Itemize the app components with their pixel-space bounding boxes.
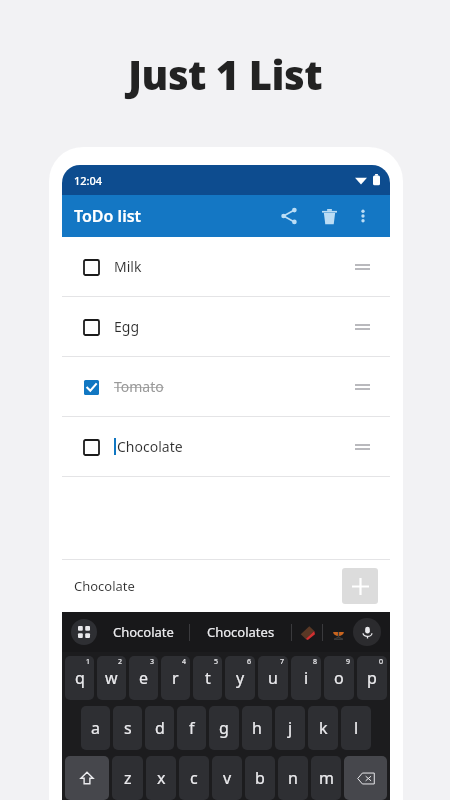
button[interactable]: Chocolate xyxy=(74,560,342,612)
button[interactable]: Chocolate xyxy=(97,623,189,641)
staticText: g xyxy=(219,717,229,739)
staticText: t xyxy=(205,667,211,689)
staticText: Chocolates xyxy=(207,623,275,641)
button[interactable]: i xyxy=(291,656,321,700)
staticText: n xyxy=(288,767,298,789)
button[interactable]: Uncheck Tomato xyxy=(76,372,106,402)
button[interactable]: g xyxy=(209,706,239,750)
staticText: m xyxy=(319,767,334,789)
staticText: 9 xyxy=(346,657,351,667)
staticText: o xyxy=(334,667,344,689)
button[interactable]: Voice input xyxy=(353,618,381,646)
button[interactable]: c xyxy=(179,756,209,800)
button[interactable]: l xyxy=(341,706,371,750)
button[interactable]: m xyxy=(311,756,341,800)
button[interactable]: r xyxy=(161,656,190,700)
staticText: e xyxy=(139,667,149,689)
staticText: s xyxy=(124,717,132,739)
staticText: 1 xyxy=(86,657,91,667)
button[interactable]: Check Chocolate xyxy=(62,417,390,476)
button[interactable]: Chocolate emoji xyxy=(292,625,322,640)
button[interactable]: Reorder Milk xyxy=(348,253,376,281)
staticText: Tomato xyxy=(114,377,164,396)
staticText: Chocolate xyxy=(117,437,183,456)
button[interactable]: Check Egg xyxy=(76,312,106,342)
button[interactable]: Share xyxy=(272,199,306,233)
button[interactable]: Check Milk xyxy=(76,252,106,282)
button[interactable]: n xyxy=(278,756,308,800)
button[interactable]: o xyxy=(324,656,354,700)
staticText: u xyxy=(268,667,278,689)
staticText: i xyxy=(304,667,309,689)
button[interactable]: Reorder Tomato xyxy=(348,373,376,401)
button[interactable]: d xyxy=(145,706,174,750)
staticText: r xyxy=(172,667,179,689)
button[interactable]: j xyxy=(275,706,305,750)
button[interactable]: t xyxy=(193,656,222,700)
staticText: Just 1 List xyxy=(128,47,323,101)
staticText: v xyxy=(223,767,232,789)
staticText: Egg xyxy=(114,317,140,336)
button[interactable]: p xyxy=(357,656,387,700)
staticText: 5 xyxy=(214,657,219,667)
staticText: 2 xyxy=(118,657,123,667)
button[interactable]: f xyxy=(177,706,206,750)
button[interactable]: z xyxy=(112,756,143,800)
button[interactable]: q xyxy=(65,656,94,700)
staticText: y xyxy=(236,667,245,689)
button[interactable]: b xyxy=(245,756,275,800)
button[interactable]: Fondue emoji xyxy=(323,625,353,640)
staticText: 12:04 xyxy=(74,173,103,188)
button[interactable]: Uncheck Tomato xyxy=(62,357,390,416)
button[interactable]: Reorder Egg xyxy=(348,313,376,341)
staticText: k xyxy=(319,717,328,739)
button[interactable]: Clipboard xyxy=(71,619,97,645)
staticText: Milk xyxy=(114,257,142,276)
button[interactable]: v xyxy=(212,756,242,800)
button[interactable]: y xyxy=(225,656,255,700)
button[interactable]: e xyxy=(129,656,158,700)
button[interactable]: Backspace xyxy=(344,756,387,800)
button[interactable]: Delete xyxy=(312,199,346,233)
button[interactable]: x xyxy=(146,756,176,800)
staticText: z xyxy=(124,767,132,789)
staticText: w xyxy=(105,667,118,689)
staticText: 3 xyxy=(150,657,155,667)
staticText: Chocolate xyxy=(74,577,135,595)
button[interactable]: Check Egg xyxy=(62,297,390,356)
staticText: x xyxy=(157,767,166,789)
button[interactable]: Add item xyxy=(342,568,378,604)
button[interactable]: Chocolates xyxy=(190,623,291,641)
staticText: b xyxy=(255,767,265,789)
button[interactable]: u xyxy=(258,656,288,700)
staticText: 8 xyxy=(313,657,318,667)
button[interactable]: a xyxy=(81,706,110,750)
button[interactable]: More options xyxy=(348,201,378,231)
button[interactable]: Shift xyxy=(65,756,109,800)
staticText: j xyxy=(288,717,293,739)
staticText: a xyxy=(91,717,100,739)
button[interactable]: Check Milk xyxy=(62,237,390,296)
staticText: q xyxy=(75,667,85,689)
staticText: p xyxy=(367,667,377,689)
button[interactable]: Reorder Chocolate xyxy=(348,433,376,461)
staticText: 7 xyxy=(280,657,285,667)
staticText: 6 xyxy=(247,657,252,667)
staticText: Chocolate xyxy=(113,623,174,641)
staticText: c xyxy=(190,767,198,789)
staticText: d xyxy=(155,717,165,739)
button[interactable]: Check Chocolate xyxy=(76,432,106,462)
staticText: h xyxy=(252,717,262,739)
button[interactable]: w xyxy=(97,656,126,700)
button[interactable]: s xyxy=(113,706,142,750)
button[interactable]: h xyxy=(242,706,272,750)
staticText: f xyxy=(189,717,195,739)
button[interactable]: k xyxy=(308,706,338,750)
staticText: ToDo list xyxy=(74,205,142,227)
staticText: l xyxy=(354,717,359,739)
staticText: 4 xyxy=(182,657,187,667)
staticText: 0 xyxy=(379,657,384,667)
